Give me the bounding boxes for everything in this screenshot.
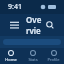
button[interactable]: Menu [6,17,22,33]
staticText: Stats [28,57,38,62]
staticText: Home [5,57,17,62]
staticText: Profile [47,57,60,62]
button[interactable]: Search [42,17,58,33]
staticText: Overview [26,14,42,36]
button[interactable]: Stats [22,48,43,64]
staticText: 9:41 [8,2,22,12]
button[interactable]: Profile [43,48,64,64]
button[interactable]: Home [0,48,22,64]
